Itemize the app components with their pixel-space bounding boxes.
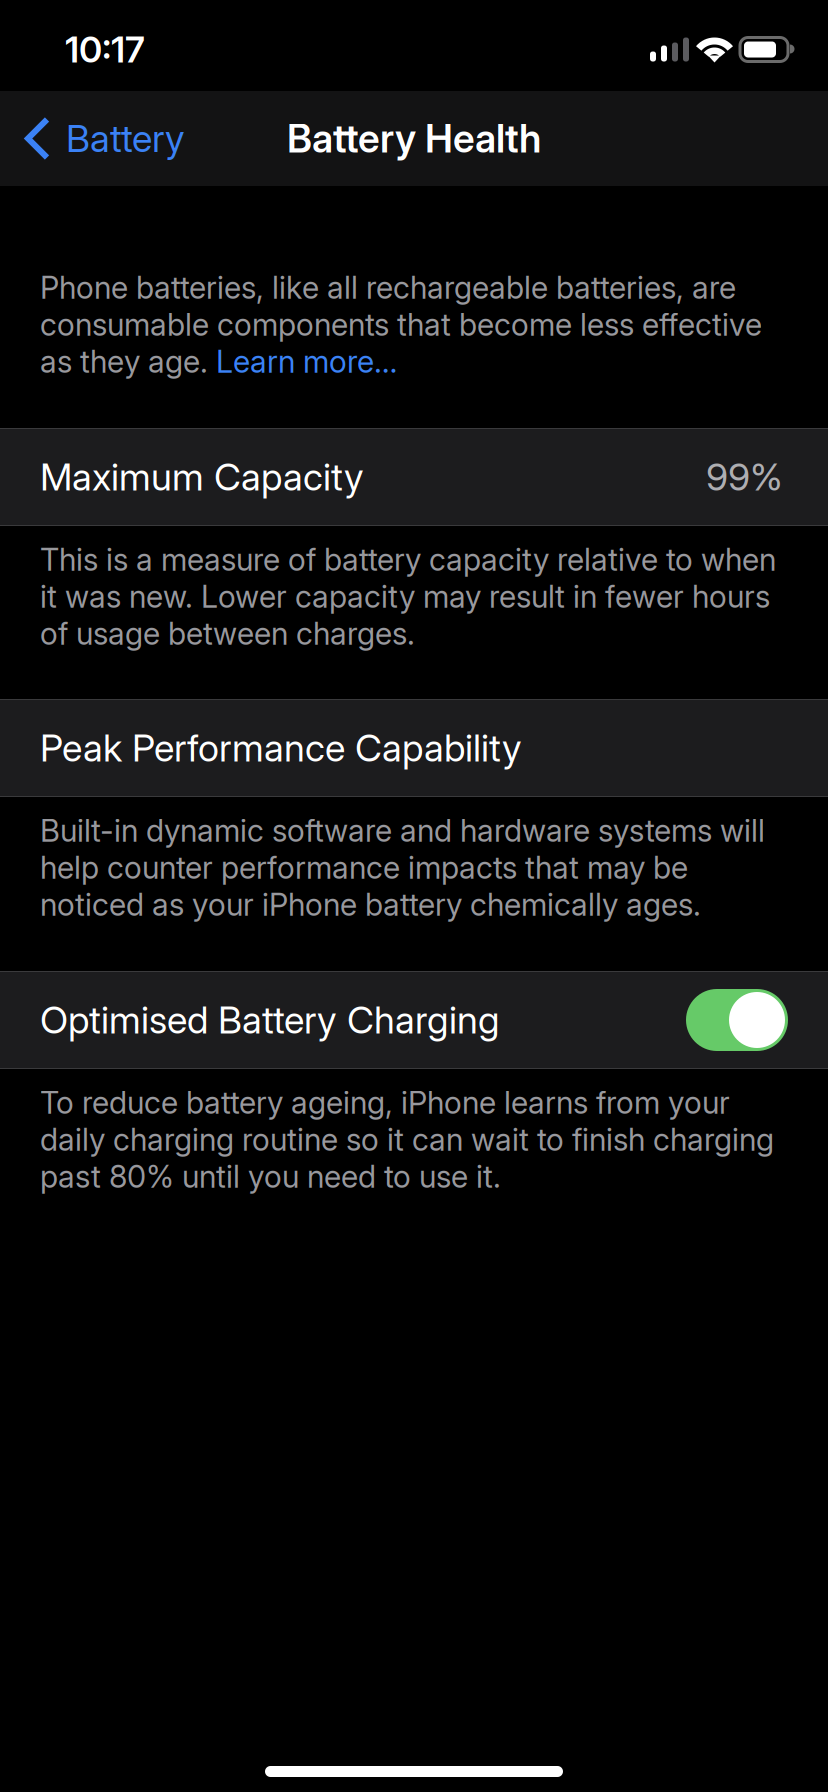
staticText: of usage between charges. [40, 615, 415, 652]
staticText: Learn more… [216, 343, 397, 380]
staticText: 10:17 [65, 28, 145, 71]
staticText: daily charging routine so it can wait to… [40, 1121, 774, 1158]
staticText: it was new. Lower capacity may result in… [40, 578, 770, 615]
button[interactable]: Peak Performance Capability [0, 699, 828, 797]
staticText: Built-in dynamic software and hardware s… [40, 812, 765, 849]
staticText: as they age. [40, 343, 216, 380]
staticText: Peak Performance Capability [40, 725, 522, 771]
staticText: Optimised Battery Charging [40, 997, 500, 1043]
button[interactable]: Back to Battery [0, 94, 203, 183]
staticText: To reduce battery ageing, iPhone learns … [40, 1084, 730, 1121]
staticText: Maximum Capacity [40, 454, 364, 500]
button[interactable]: Learn more… [216, 343, 397, 380]
staticText: Battery Health [287, 115, 541, 162]
staticText: help counter performance impacts that ma… [40, 849, 688, 886]
staticText: Phone batteries, like all rechargeable b… [40, 269, 736, 306]
staticText: This is a measure of battery capacity re… [40, 541, 776, 578]
staticText: noticed as your iPhone battery chemicall… [40, 886, 701, 923]
staticText: 99% [706, 454, 783, 500]
staticText: Battery [66, 116, 185, 161]
staticText: consumable components that become less e… [40, 306, 762, 343]
staticText: past 80% until you need to use it. [40, 1158, 501, 1195]
button[interactable]: Optimised Battery Charging [686, 989, 788, 1051]
